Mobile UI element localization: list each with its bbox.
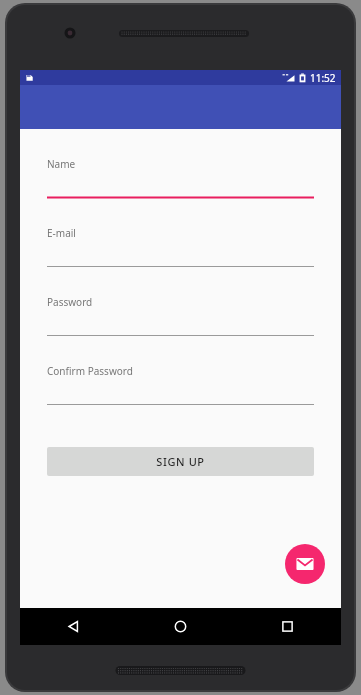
button[interactable]: Confirm Password (47, 364, 314, 433)
button[interactable]: E-mail (47, 226, 314, 295)
button[interactable]: Home (127, 608, 234, 645)
staticText: E-mail (47, 226, 76, 240)
button[interactable]: Back (20, 608, 127, 645)
button[interactable]: SIGN UP (47, 447, 314, 476)
button[interactable]: Recent apps (234, 608, 341, 645)
staticText: Confirm Password (47, 364, 133, 378)
button[interactable]: Name (47, 157, 314, 226)
staticText: 11:52 (310, 71, 336, 85)
staticText: SIGN UP (156, 454, 205, 469)
button[interactable]: Send email (285, 544, 325, 584)
staticText: Password (47, 295, 93, 309)
button[interactable]: Password (47, 295, 314, 364)
staticText: Name (47, 157, 76, 171)
